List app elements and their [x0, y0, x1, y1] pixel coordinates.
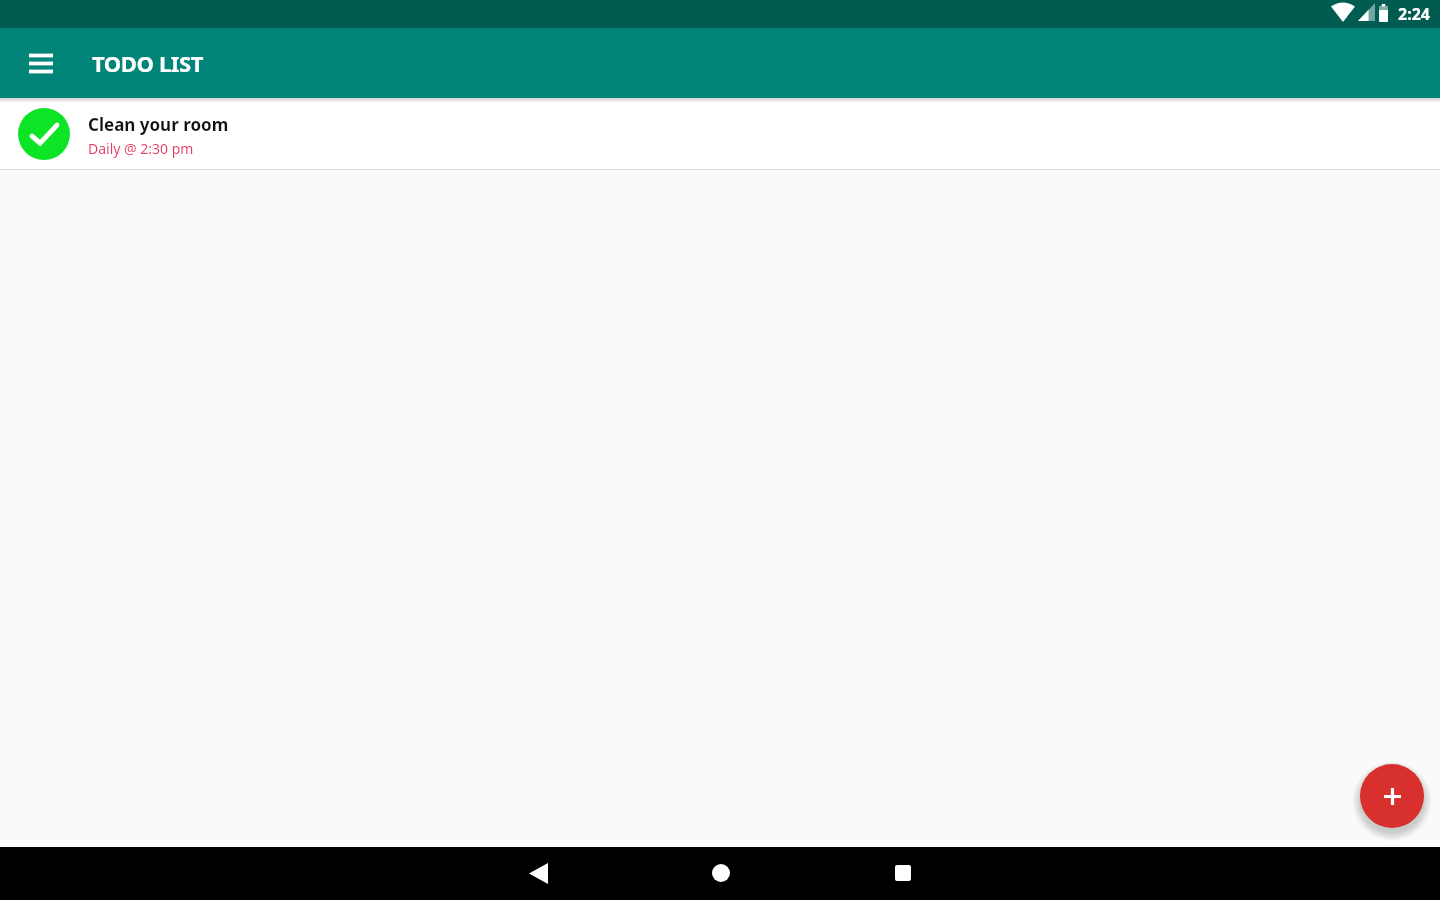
- button[interactable]: Clean your room: [0, 98, 1440, 169]
- button[interactable]: [879, 849, 927, 897]
- button[interactable]: [514, 849, 562, 897]
- button[interactable]: [1360, 764, 1424, 828]
- staticText: Clean your room: [88, 113, 229, 136]
- staticText: TODO LIST: [92, 48, 203, 78]
- button[interactable]: [17, 39, 65, 87]
- button[interactable]: [697, 849, 745, 897]
- staticText: Daily @ 2:30 pm: [88, 139, 194, 158]
- staticText: 2:24: [1398, 3, 1430, 25]
